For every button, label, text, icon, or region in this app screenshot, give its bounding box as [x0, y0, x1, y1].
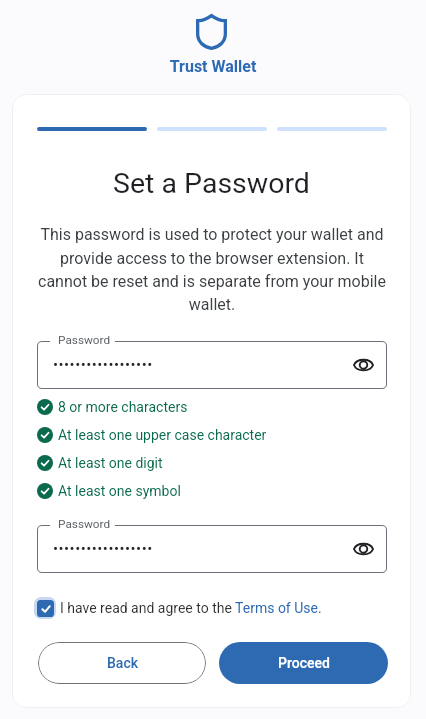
staticText: •••••••••••••••••• — [53, 540, 153, 558]
staticText: This password is used to protect your wa… — [37, 225, 387, 314]
staticText: •••••••••••••••••• — [53, 356, 153, 374]
button[interactable]: Proceed — [219, 642, 388, 684]
button[interactable]: Show password — [346, 532, 380, 566]
button[interactable]: Back — [38, 642, 206, 684]
staticText: At least one symbol — [58, 483, 181, 499]
staticText: At least one upper case character — [58, 427, 267, 443]
staticText: Back — [107, 655, 138, 671]
button[interactable]: Show password — [346, 348, 380, 382]
staticText: Set a Password — [12, 167, 411, 200]
staticText: I have read and agree to the Terms of Us… — [60, 600, 322, 616]
staticText: Password — [58, 517, 111, 531]
staticText: At least one digit — [58, 455, 163, 471]
staticText: Proceed — [278, 655, 330, 671]
staticText: 8 or more characters — [58, 399, 188, 415]
staticText: Trust Wallet — [0, 57, 426, 76]
button[interactable]: Agree to Terms of Use — [34, 597, 56, 619]
staticText: Password — [58, 333, 111, 347]
